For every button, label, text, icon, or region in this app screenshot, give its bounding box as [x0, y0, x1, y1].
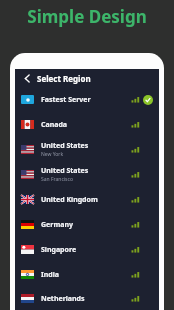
- button[interactable]: United Kingdom: [15, 187, 159, 212]
- button[interactable]: Fastest Server: [15, 87, 159, 112]
- staticText: Singapore: [41, 245, 77, 255]
- staticText: Fastest Server: [41, 95, 91, 105]
- button[interactable]: Singapore: [15, 237, 159, 262]
- button[interactable]: United States: [15, 137, 159, 162]
- button[interactable]: Canada: [15, 112, 159, 137]
- staticText: United States: [41, 141, 89, 151]
- staticText: Simple Design: [27, 5, 147, 28]
- staticText: India: [41, 270, 59, 280]
- staticText: Select Region: [37, 73, 91, 84]
- button[interactable]: United States: [15, 162, 159, 187]
- staticText: Germany: [41, 220, 73, 230]
- button[interactable]: India: [15, 262, 159, 287]
- staticText: New York: [41, 151, 64, 158]
- staticText: United States: [41, 166, 89, 176]
- staticText: Netherlands: [41, 294, 85, 304]
- button[interactable]: Netherlands: [15, 287, 159, 310]
- staticText: United Kingdom: [41, 195, 98, 205]
- staticText: Canada: [41, 120, 68, 130]
- staticText: San Francisco: [41, 176, 73, 183]
- button[interactable]: Germany: [15, 212, 159, 237]
- button[interactable]: Back: [19, 70, 35, 86]
